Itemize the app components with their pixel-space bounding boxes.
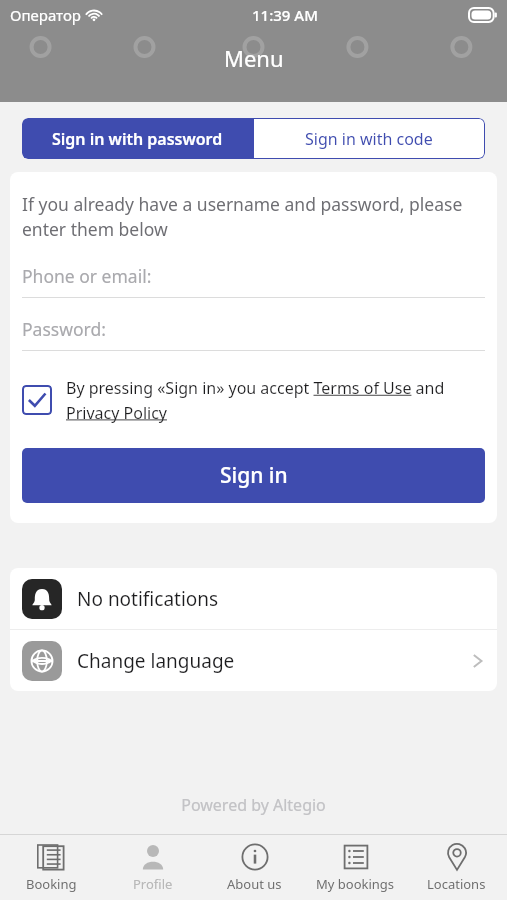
- staticText: My bookings: [316, 875, 395, 893]
- staticText: Booking: [26, 875, 77, 893]
- button[interactable]: Change language: [10, 630, 497, 691]
- staticText: 11:39 AM: [252, 5, 318, 25]
- staticText: If you already have a username and passw…: [22, 192, 485, 242]
- button[interactable]: Profile: [102, 835, 204, 900]
- staticText: Profile: [133, 875, 173, 893]
- button[interactable]: Phone or email:: [22, 264, 485, 298]
- button[interactable]: No notifications: [10, 568, 497, 629]
- staticText: Phone or email:: [22, 264, 152, 288]
- button[interactable]: By pressing «Sign in» you accept Terms o…: [22, 377, 485, 423]
- staticText: Sign in with code: [305, 128, 433, 150]
- button[interactable]: Password:: [22, 317, 485, 351]
- button[interactable]: Sign in with code: [253, 118, 485, 159]
- button[interactable]: Locations: [406, 835, 507, 900]
- staticText: No notifications: [77, 586, 219, 612]
- button[interactable]: Sign in: [22, 448, 485, 503]
- staticText: Password:: [22, 317, 106, 341]
- staticText: Powered by Altegio: [0, 794, 507, 816]
- button[interactable]: My bookings: [305, 835, 406, 900]
- staticText: Change language: [77, 648, 235, 674]
- button[interactable]: Booking: [0, 835, 102, 900]
- staticText: Locations: [427, 875, 486, 893]
- staticText: Sign in: [220, 461, 288, 490]
- staticText: By pressing «Sign in» you accept Terms o…: [66, 377, 485, 423]
- staticText: Sign in with password: [52, 128, 223, 150]
- button[interactable]: Sign in with password: [22, 118, 253, 159]
- staticText: Оператор: [10, 5, 81, 25]
- staticText: About us: [227, 875, 282, 893]
- staticText: Menu: [224, 43, 284, 73]
- button[interactable]: About us: [204, 835, 305, 900]
